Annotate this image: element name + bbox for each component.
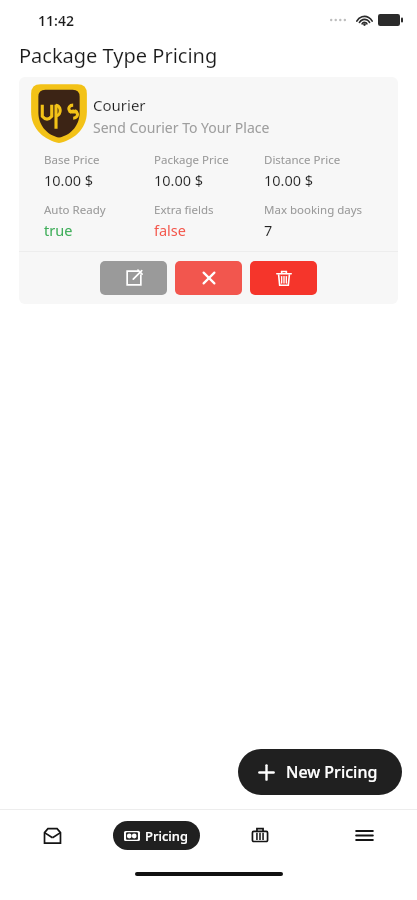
button[interactable]: Edit bbox=[100, 261, 167, 295]
staticText: true bbox=[44, 220, 73, 240]
button[interactable]: Cancel bbox=[175, 261, 242, 295]
staticText: Extra fields bbox=[154, 202, 214, 218]
staticText: 10.00 $ bbox=[44, 170, 94, 190]
button[interactable]: UPS logo bbox=[19, 77, 398, 304]
button[interactable]: Orders bbox=[0, 810, 104, 860]
button[interactable]: New Pricing bbox=[238, 749, 402, 795]
other: UPS logo bbox=[25, 80, 93, 150]
staticText: Base Price bbox=[44, 152, 100, 168]
staticText: 11:42 bbox=[38, 11, 74, 30]
staticText: false bbox=[154, 220, 186, 240]
staticText: Courier bbox=[93, 95, 146, 115]
staticText: Pricing bbox=[145, 827, 189, 845]
staticText: New Pricing bbox=[286, 761, 378, 783]
staticText: 10.00 $ bbox=[154, 170, 204, 190]
staticText: 10.00 $ bbox=[264, 170, 314, 190]
staticText: 7 bbox=[264, 220, 273, 240]
staticText: Max booking days bbox=[264, 202, 363, 218]
button[interactable]: Pricing bbox=[113, 821, 200, 850]
staticText: Package Type Pricing bbox=[19, 42, 218, 69]
button[interactable]: Services bbox=[208, 810, 312, 860]
button[interactable]: Delete bbox=[250, 261, 317, 295]
staticText: Auto Ready bbox=[44, 202, 106, 218]
staticText: Send Courier To Your Place bbox=[93, 118, 270, 137]
staticText: Distance Price bbox=[264, 152, 341, 168]
staticText: Package Price bbox=[154, 152, 229, 168]
button[interactable]: Menu bbox=[312, 810, 417, 860]
